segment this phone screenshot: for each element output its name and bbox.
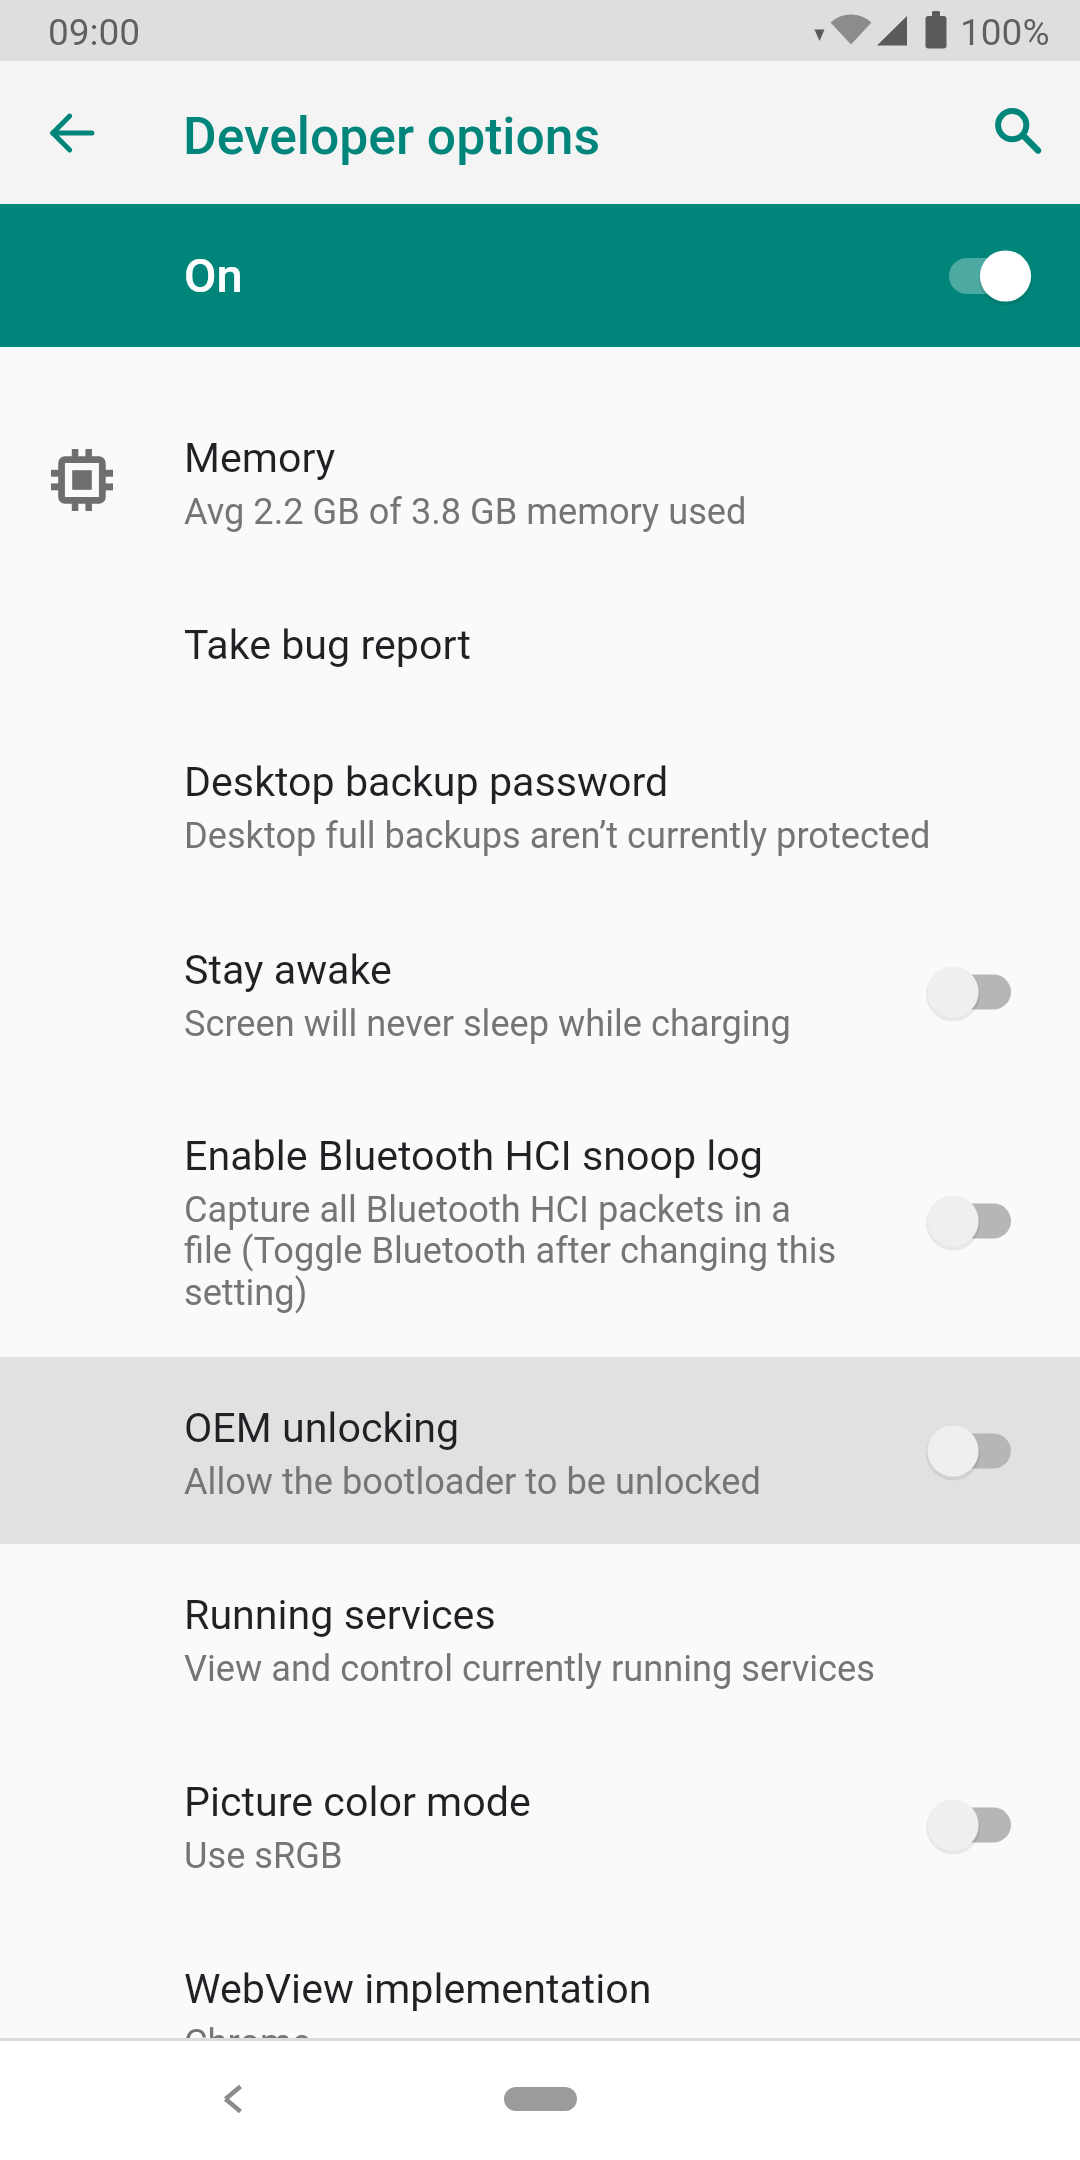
button[interactable]: Search [968,85,1064,181]
button[interactable]: Home [504,2087,577,2111]
staticText: Memory [184,434,336,482]
button[interactable]: Desktop backup password [0,711,1080,899]
staticText: Picture color mode [184,1778,531,1826]
staticText: Stay awake [184,946,392,994]
staticText: Desktop backup password [184,758,669,806]
button[interactable]: Toggle [880,1780,1080,1870]
button[interactable]: Picture color mode [0,1731,1080,1918]
button[interactable]: On [0,204,1080,347]
staticText: View and control currently running servi… [184,1647,875,1689]
staticText: Screen will never sleep while charging [184,1002,791,1044]
staticText: On [184,248,243,303]
staticText: Use sRGB [184,1834,343,1876]
staticText: Avg 2.2 GB of 3.8 GB memory used [184,490,747,532]
button[interactable]: Toggle [880,1176,1080,1266]
staticText: Enable Bluetooth HCI snoop log [184,1132,763,1180]
button[interactable]: Running services [0,1544,1080,1731]
button[interactable]: Stay awake [0,899,1080,1085]
button[interactable]: Toggle [880,947,1080,1037]
staticText: Chrome [184,2021,311,2038]
button[interactable]: Memory [0,387,1080,574]
staticText: Desktop full backups aren’t currently pr… [184,814,931,856]
button[interactable]: Take bug report [0,574,1080,711]
button[interactable]: OEM unlocking [0,1357,1080,1544]
staticText: Take bug report [184,621,471,669]
button[interactable]: Navigate up [24,85,120,181]
button[interactable]: Developer options on [920,231,1080,321]
staticText: OEM unlocking [184,1404,460,1452]
staticText: WebView implementation [184,1965,652,2013]
staticText: 100% [960,11,1050,54]
button[interactable]: Toggle [880,1406,1080,1496]
staticText: Allow the bootloader to be unlocked [184,1460,761,1502]
button[interactable]: Back [188,2054,278,2144]
staticText: Developer options [183,106,601,166]
staticText: 09:00 [48,11,141,54]
staticText: Capture all Bluetooth HCI packets in a f… [184,1188,840,1314]
button[interactable]: Enable Bluetooth HCI snoop log [0,1085,1080,1357]
button[interactable]: WebView implementation [0,1918,1080,2038]
staticText: Running services [184,1591,496,1639]
